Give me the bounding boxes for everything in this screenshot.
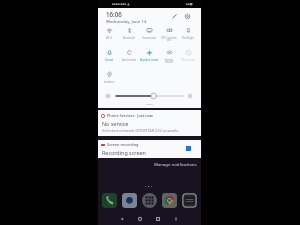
staticText: Airplane mode — [138, 58, 160, 62]
staticText: Wi-Fi — [98, 36, 120, 40]
staticText: Location — [98, 80, 120, 84]
staticText: ▪▪▪▪ ▪▪▪ ▲ — [112, 2, 130, 6]
button[interactable]: Home — [136, 215, 144, 223]
button[interactable]: Flashlight — [177, 27, 199, 40]
staticText: Phone Services · Just now — [107, 113, 153, 118]
button[interactable]: Recents — [154, 215, 162, 223]
staticText: Bluetooth — [118, 36, 140, 40]
staticText: 16:06 — [106, 10, 122, 18]
button[interactable]: Sound — [98, 49, 120, 62]
staticText: Flashlight — [177, 36, 199, 40]
button[interactable]: Screen record — [158, 49, 180, 64]
button[interactable]: Edit — [171, 13, 178, 20]
button[interactable]: Apps — [142, 193, 157, 208]
button[interactable]: Settings — [184, 13, 191, 20]
button[interactable]: Auto-rotate — [118, 49, 140, 62]
staticText: Screen record — [158, 58, 180, 64]
button[interactable]: Screenshot — [172, 215, 180, 223]
staticText: No service — [102, 120, 129, 127]
button[interactable]: Phone Services · Just now — [98, 110, 201, 136]
button[interactable]: Location — [98, 71, 120, 84]
staticText: NFC camera use — [158, 36, 180, 42]
staticText: Screen recording — [107, 142, 139, 147]
button[interactable]: Brightness — [115, 93, 184, 99]
button[interactable]: Phone — [102, 193, 117, 208]
staticText: Recording screen — [102, 149, 146, 156]
staticText: Selected network (KYIVSTAR 4G) unavaila — [102, 128, 179, 133]
staticText: Sound — [98, 58, 120, 62]
button[interactable]: Wi-Fi — [98, 27, 120, 40]
button[interactable]: Phone only — [177, 49, 199, 62]
button[interactable]: Screen recording — [98, 140, 201, 158]
button[interactable]: Gallery — [182, 193, 197, 208]
button[interactable]: Chrome — [162, 193, 177, 208]
button[interactable]: Messages — [122, 193, 137, 208]
staticText: Phone only — [177, 58, 199, 62]
staticText: Auto-rotate — [118, 58, 140, 62]
staticText: Screencast — [138, 36, 160, 40]
button[interactable]: Airplane mode — [138, 49, 160, 62]
staticText: Wednesday, June 14 — [106, 18, 147, 24]
button[interactable]: NFC camera use — [158, 27, 180, 42]
button[interactable]: Screencast — [138, 27, 160, 40]
staticText: ▪▪■ — [186, 2, 193, 5]
button[interactable]: Bluetooth — [118, 27, 140, 40]
button[interactable]: Back — [118, 215, 126, 223]
button[interactable]: Manage notifications — [154, 161, 197, 167]
